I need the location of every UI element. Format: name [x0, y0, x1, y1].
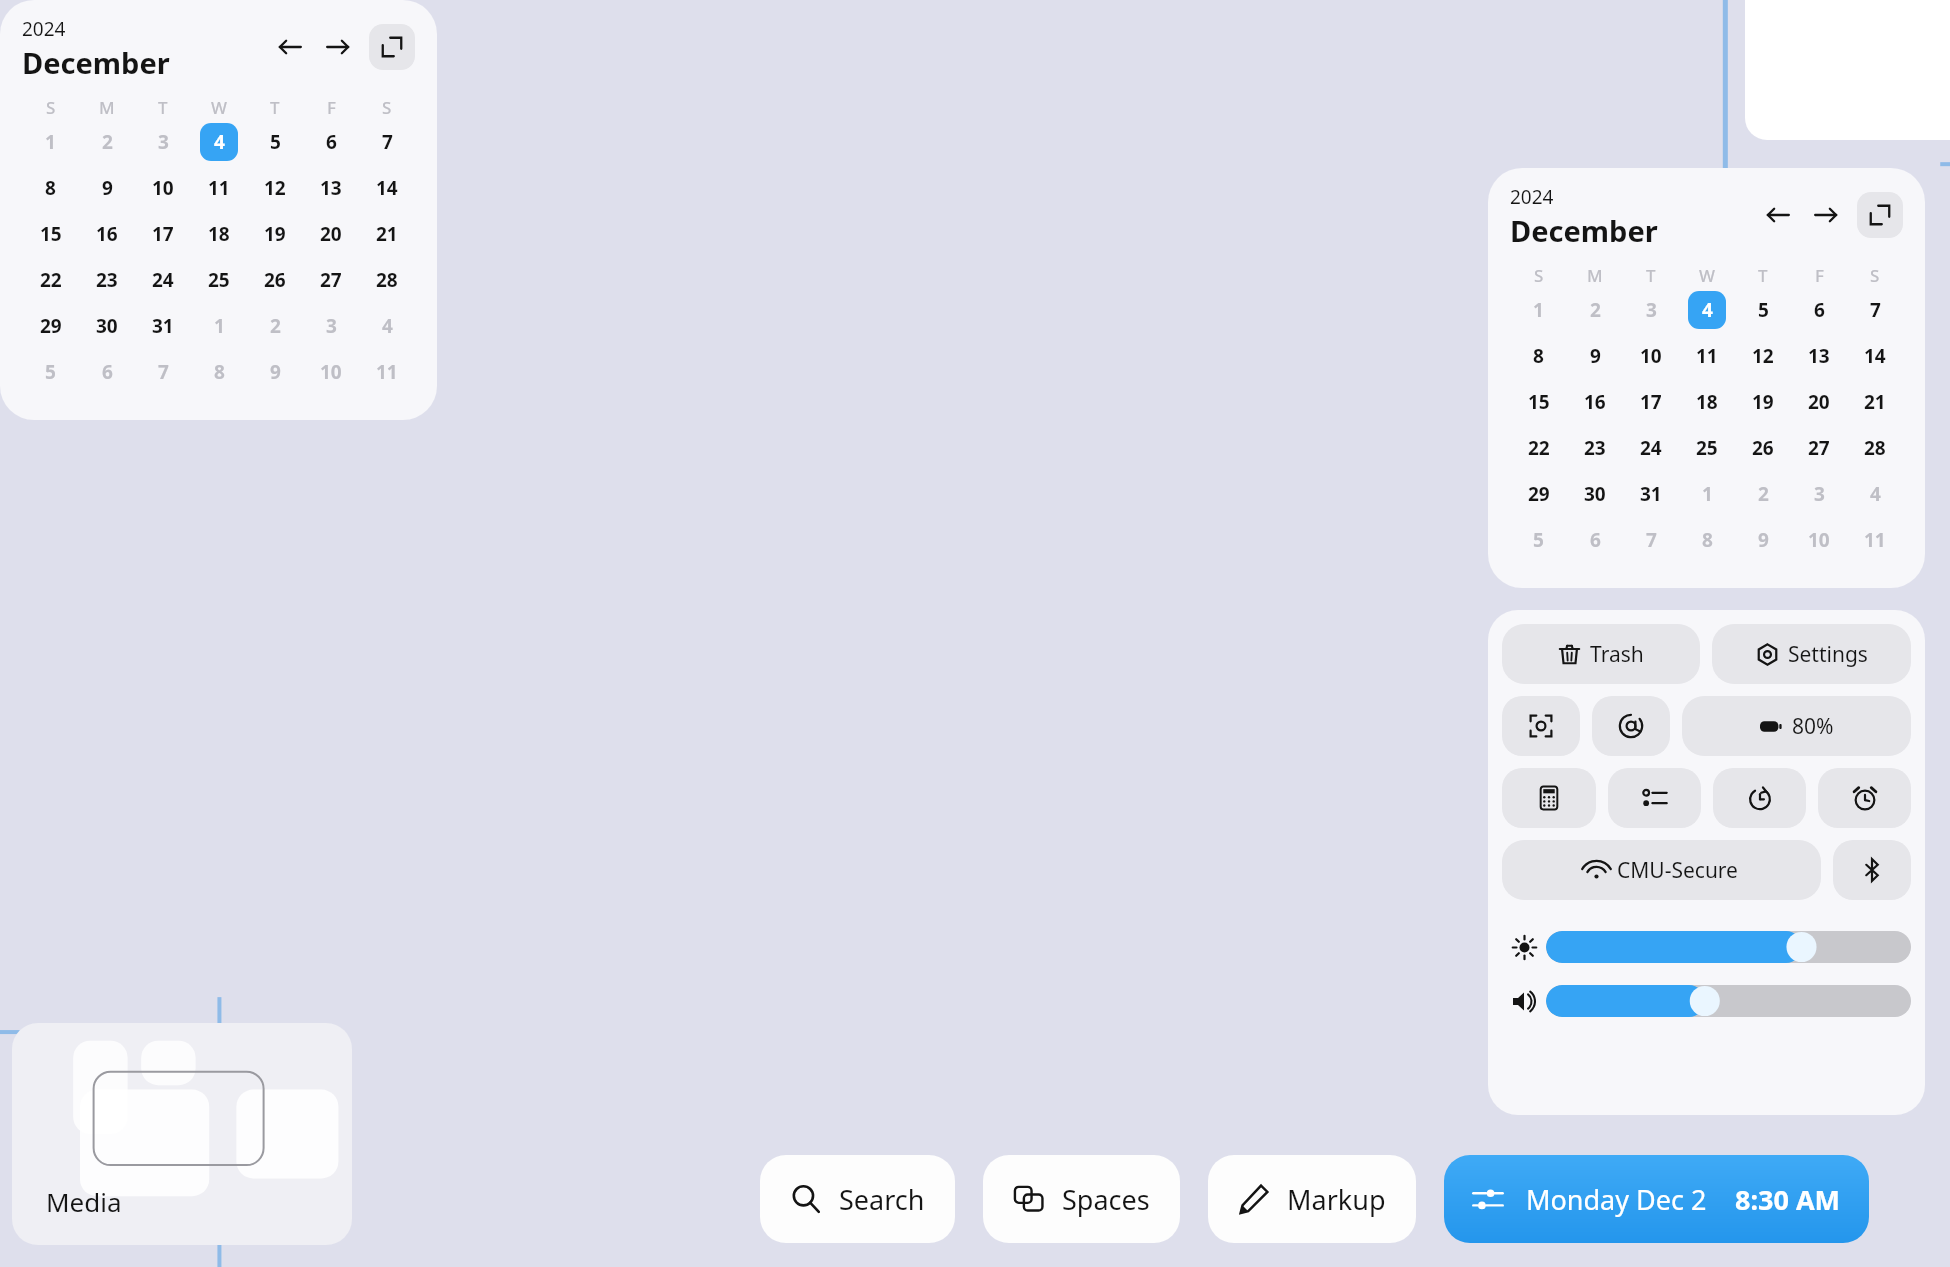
button[interactable]: 10 [1623, 333, 1679, 379]
button[interactable]: 12 [1735, 333, 1791, 379]
button[interactable]: 1 [22, 119, 79, 165]
button[interactable]: 3 [1791, 471, 1847, 517]
button[interactable]: 8 [22, 165, 79, 211]
button[interactable]: 30 [1567, 471, 1623, 517]
button[interactable]: Monday Dec 2 [1444, 1155, 1869, 1243]
button[interactable]: 23 [1567, 425, 1623, 471]
button[interactable]: 31 [135, 303, 191, 349]
button[interactable]: 24 [1623, 425, 1679, 471]
button[interactable]: 1 [1679, 471, 1735, 517]
button[interactable]: Calculator [1502, 768, 1596, 828]
button[interactable]: 25 [191, 257, 247, 303]
button[interactable]: 25 [1679, 425, 1735, 471]
button[interactable] [1546, 985, 1911, 1017]
button[interactable]: 14 [1847, 333, 1903, 379]
button[interactable]: 3 [1623, 287, 1679, 333]
button[interactable]: 3 [135, 119, 191, 165]
button[interactable]: 28 [1847, 425, 1903, 471]
button[interactable]: Next month [319, 28, 357, 66]
button[interactable]: 12 [247, 165, 303, 211]
button[interactable]: Previous month [1759, 196, 1797, 234]
button[interactable]: 8 [1510, 333, 1567, 379]
button[interactable]: 28 [359, 257, 415, 303]
button[interactable]: 22 [22, 257, 79, 303]
button[interactable]: Reminders [1608, 768, 1701, 828]
button[interactable]: Settings [1712, 624, 1911, 684]
button[interactable]: Expand calendar [1857, 192, 1903, 238]
button[interactable]: 8 [191, 349, 247, 395]
button[interactable]: Spaces [983, 1155, 1180, 1243]
button[interactable]: 11 [1679, 333, 1735, 379]
button[interactable]: 6 [1791, 287, 1847, 333]
button[interactable]: 7 [1623, 517, 1679, 563]
button[interactable]: 7 [359, 119, 415, 165]
button[interactable]: 2 [247, 303, 303, 349]
button[interactable]: 11 [191, 165, 247, 211]
button[interactable]: 5 [1510, 517, 1567, 563]
button[interactable]: 17 [135, 211, 191, 257]
button[interactable]: 5 [1735, 287, 1791, 333]
button[interactable]: Trash [1502, 624, 1700, 684]
button[interactable]: 23 [79, 257, 135, 303]
button[interactable] [1546, 931, 1911, 963]
button[interactable]: 13 [303, 165, 359, 211]
button[interactable]: 15 [22, 211, 79, 257]
button[interactable]: Alarm [1818, 768, 1911, 828]
button[interactable]: 18 [1679, 379, 1735, 425]
button[interactable]: 31 [1623, 471, 1679, 517]
button[interactable]: 11 [359, 349, 415, 395]
button[interactable]: 19 [247, 211, 303, 257]
button[interactable]: Markup [1208, 1155, 1416, 1243]
button[interactable]: 27 [1791, 425, 1847, 471]
button[interactable]: 26 [1735, 425, 1791, 471]
button[interactable]: 16 [79, 211, 135, 257]
button[interactable]: 19 [1735, 379, 1791, 425]
button[interactable]: 14 [359, 165, 415, 211]
button[interactable]: 4 [359, 303, 415, 349]
button[interactable]: 20 [1791, 379, 1847, 425]
button[interactable]: 8 [1679, 517, 1735, 563]
button[interactable]: Next month [1807, 196, 1845, 234]
button[interactable]: 9 [247, 349, 303, 395]
button[interactable]: 21 [1847, 379, 1903, 425]
button[interactable]: 5 [247, 119, 303, 165]
button[interactable]: 26 [247, 257, 303, 303]
button[interactable]: 27 [303, 257, 359, 303]
button[interactable]: 10 [303, 349, 359, 395]
button[interactable]: 2 [1735, 471, 1791, 517]
button[interactable]: 7 [1847, 287, 1903, 333]
button[interactable]: 80% [1682, 696, 1911, 756]
button[interactable]: 1 [191, 303, 247, 349]
button[interactable]: 30 [79, 303, 135, 349]
button[interactable]: 18 [191, 211, 247, 257]
button[interactable]: 5 [22, 349, 79, 395]
button[interactable]: 29 [1510, 471, 1567, 517]
button[interactable]: Search [760, 1155, 955, 1243]
button[interactable]: 4 [1847, 471, 1903, 517]
button[interactable]: 2 [79, 119, 135, 165]
button[interactable]: 3 [303, 303, 359, 349]
button[interactable]: 6 [1567, 517, 1623, 563]
button[interactable]: 21 [359, 211, 415, 257]
button[interactable]: CMU-Secure [1502, 840, 1821, 900]
button[interactable]: 24 [135, 257, 191, 303]
button[interactable]: 9 [79, 165, 135, 211]
button[interactable]: 13 [1791, 333, 1847, 379]
button[interactable]: 15 [1510, 379, 1567, 425]
button[interactable]: 2 [1567, 287, 1623, 333]
button[interactable]: 20 [303, 211, 359, 257]
button[interactable]: Screenshot [1502, 696, 1580, 756]
button[interactable]: Media [12, 1023, 352, 1245]
button[interactable]: 16 [1567, 379, 1623, 425]
button[interactable]: Timer [1713, 768, 1806, 828]
button[interactable]: 10 [1791, 517, 1847, 563]
button[interactable]: 29 [22, 303, 79, 349]
button[interactable]: 17 [1623, 379, 1679, 425]
button[interactable]: Bluetooth [1833, 840, 1911, 900]
button[interactable]: 11 [1847, 517, 1903, 563]
button[interactable]: Previous month [271, 28, 309, 66]
button[interactable]: 9 [1735, 517, 1791, 563]
button[interactable]: 9 [1567, 333, 1623, 379]
button[interactable]: 7 [135, 349, 191, 395]
button[interactable]: 6 [79, 349, 135, 395]
